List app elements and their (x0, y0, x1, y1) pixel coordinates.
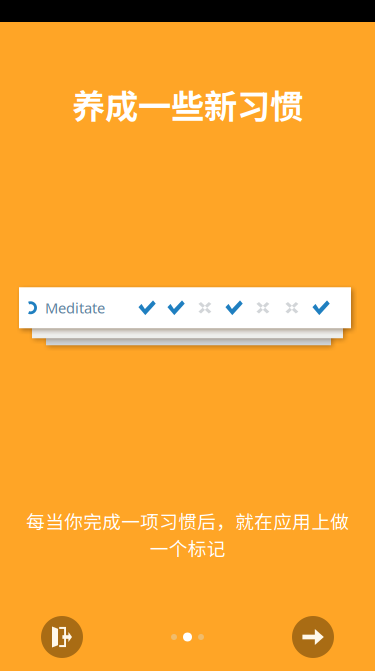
staticText: Meditate (45, 298, 105, 318)
button[interactable]: Skip (41, 616, 83, 658)
staticText: 每当你完成一项习惯后，就在应用上做 一个标记 (26, 507, 349, 561)
button[interactable]: Next (292, 616, 334, 658)
staticText: 养成一些新习惯 (72, 80, 303, 128)
